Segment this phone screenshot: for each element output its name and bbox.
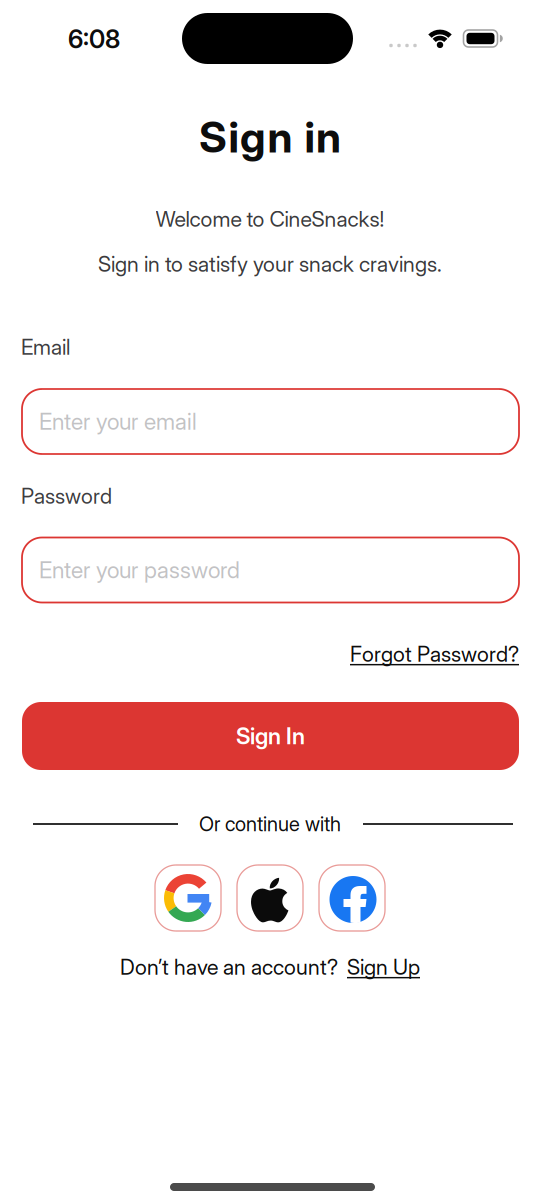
staticText: Email <box>21 334 70 360</box>
staticText: Welcome to CineSnacks! <box>155 206 384 232</box>
staticText: Sign in <box>199 112 341 162</box>
button[interactable]: Sign in with Facebook <box>319 865 385 931</box>
staticText: Forgot Password? <box>350 641 519 667</box>
button[interactable]: Enter your password <box>22 537 519 602</box>
button[interactable]: Sign In <box>22 702 519 770</box>
button[interactable]: Enter your email <box>22 389 519 454</box>
button[interactable]: Forgot Password? <box>350 641 519 667</box>
button[interactable]: Sign in with Apple <box>237 865 303 931</box>
staticText: Password <box>21 483 112 509</box>
button[interactable]: Sign in with Google <box>155 865 221 931</box>
staticText: Sign In <box>236 723 305 749</box>
staticText: Enter your password <box>39 557 240 583</box>
staticText: Sign Up <box>347 954 420 980</box>
staticText: Sign in to satisfy your snack cravings. <box>98 251 442 277</box>
staticText: Don’t have an account? <box>120 954 338 980</box>
staticText: 6:08 <box>68 24 120 54</box>
staticText: Enter your email <box>39 408 197 435</box>
button[interactable]: Sign Up <box>347 954 420 980</box>
staticText: Or continue with <box>199 812 341 836</box>
